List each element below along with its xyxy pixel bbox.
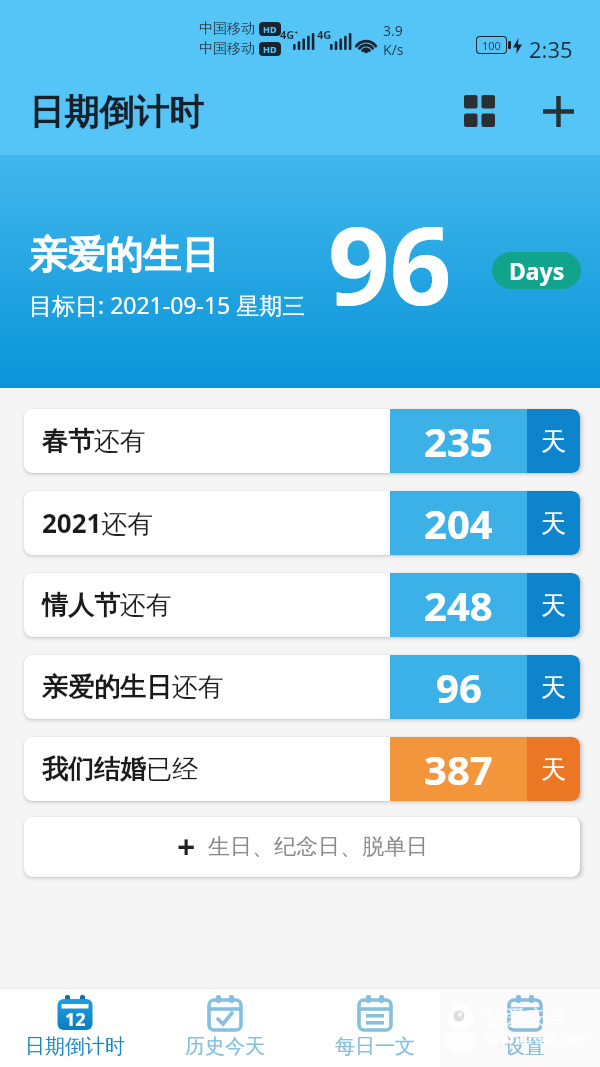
staticText: 天 [541, 672, 566, 703]
staticText: 中国移动 [199, 20, 255, 38]
staticText: 4G⁺ [280, 27, 299, 42]
button[interactable]: 历史今天 [150, 989, 300, 1067]
staticText: 204 [424, 496, 493, 550]
button[interactable]: 2021还有 [24, 491, 580, 555]
staticText: 亲爱的生日还有 [42, 671, 224, 704]
staticText: 52android.com [484, 1028, 591, 1048]
staticText: Days [509, 255, 565, 286]
staticText: 100 [482, 38, 501, 53]
button[interactable]: 亲爱的生日还有 [24, 655, 580, 719]
staticText: 2:35 [529, 34, 573, 64]
staticText: 天 [541, 508, 566, 539]
button[interactable]: 亲爱的生日 [0, 155, 600, 388]
staticText: 12 [65, 1007, 86, 1032]
button[interactable]: 设置 [450, 989, 600, 1067]
button[interactable] [535, 88, 581, 134]
staticText: 设置 [505, 1034, 545, 1059]
staticText: 我爱安卓 [484, 1005, 568, 1031]
staticText: K/s [383, 40, 404, 59]
staticText: 日期倒计时 [25, 1034, 125, 1059]
button[interactable]: 春节还有 [24, 409, 580, 473]
staticText: 春节还有 [42, 425, 146, 458]
staticText: 目标日: 2021-09-15 星期三 [29, 289, 306, 320]
button[interactable]: 每日一文 [300, 989, 450, 1067]
button[interactable] [456, 88, 502, 134]
button[interactable]: 12 [0, 989, 150, 1067]
button[interactable]: + [24, 817, 580, 877]
staticText: 天 [541, 426, 566, 457]
staticText: 248 [424, 578, 493, 632]
staticText: 2021还有 [42, 505, 154, 541]
staticText: 天 [541, 590, 566, 621]
staticText: 天 [541, 754, 566, 785]
staticText: 亲爱的生日 [29, 231, 219, 279]
staticText: 日期倒计时 [29, 90, 204, 134]
staticText: 235 [424, 414, 493, 468]
staticText: 我们结婚已经 [42, 753, 198, 786]
staticText: 中国移动 [199, 40, 255, 58]
staticText: + [177, 825, 196, 869]
staticText: 情人节还有 [42, 589, 172, 622]
staticText: 4G [317, 27, 332, 42]
staticText: HD [263, 43, 277, 55]
staticText: 历史今天 [185, 1034, 265, 1059]
staticText: 3.9 [383, 21, 403, 40]
staticText: HD [263, 23, 277, 35]
staticText: 每日一文 [335, 1034, 415, 1059]
staticText: 96 [436, 660, 482, 714]
button[interactable]: 我们结婚已经 [24, 737, 580, 801]
staticText: 96 [328, 190, 452, 337]
staticText: 生日、纪念日、脱单日 [208, 833, 428, 861]
button[interactable]: 情人节还有 [24, 573, 580, 637]
staticText: 387 [424, 742, 493, 796]
